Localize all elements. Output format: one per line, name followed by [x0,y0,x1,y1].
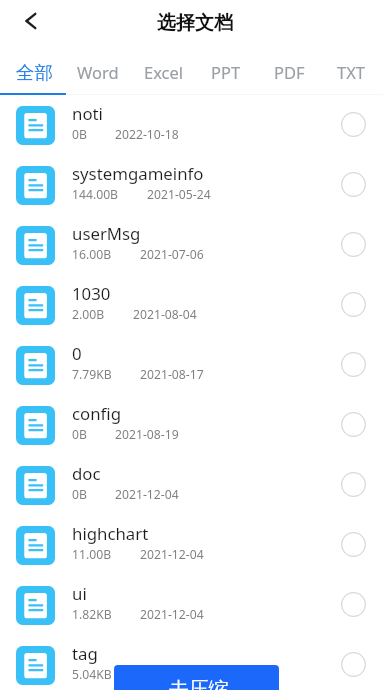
staticText: 11.00B [72,546,112,563]
staticText: 2021-12-04 [140,606,204,623]
button[interactable]: doc [0,455,383,515]
staticText: config [72,402,122,425]
button[interactable]: Select file [325,454,381,514]
button[interactable]: 去压缩 [114,665,279,690]
button[interactable]: noti [0,95,383,155]
staticText: noti [72,102,103,125]
staticText: Excel [144,61,184,83]
staticText: 2021-08-04 [133,306,197,323]
staticText: PDF [274,61,305,83]
button[interactable]: Select file [325,94,381,154]
button[interactable]: Word [67,49,129,95]
button[interactable]: Select file [325,634,381,690]
staticText: highchart [72,522,149,545]
button[interactable]: config [0,395,383,455]
staticText: 1.82KB [72,606,112,623]
staticText: 0B [72,126,87,143]
button[interactable]: PPT [195,49,257,95]
button[interactable]: TXT [320,49,382,95]
button[interactable]: 全部 [3,49,65,95]
staticText: 5.04KB [72,666,112,683]
button[interactable]: userMsg [0,215,383,275]
staticText: 7.79KB [72,366,112,383]
staticText: Word [77,61,119,83]
staticText: 1030 [72,282,111,305]
staticText: 2021-05-24 [147,186,211,203]
staticText: 0B [72,426,87,443]
button[interactable]: 0 [0,335,383,395]
button[interactable]: Select file [325,394,381,454]
button[interactable]: Select file [325,214,381,274]
staticText: 去压缩 [169,677,229,690]
staticText: 2021-08-17 [140,366,204,383]
staticText: 2021-07-06 [140,246,204,263]
staticText: 全部 [16,61,53,84]
staticText: systemgameinfo [72,162,204,185]
staticText: TXT [337,61,366,83]
staticText: 144.00B [72,186,119,203]
button[interactable]: Select file [325,274,381,334]
button[interactable]: Select file [325,154,381,214]
staticText: ui [72,582,87,605]
button[interactable]: Back [9,0,53,43]
staticText: userMsg [72,222,141,245]
staticText: PPT [211,61,241,83]
button[interactable]: highchart [0,515,383,575]
staticText: 2021-12-04 [115,486,179,503]
button[interactable]: Select file [325,514,381,574]
staticText: 2021-08-19 [115,426,179,443]
staticText: 2.00B [72,306,105,323]
staticText: 2022-10-18 [115,126,179,143]
staticText: 0B [72,486,87,503]
button[interactable]: systemgameinfo [0,155,383,215]
staticText: 16.00B [72,246,112,263]
staticText: 0 [72,342,82,365]
button[interactable]: ui [0,575,383,635]
staticText: tag [72,642,98,665]
button[interactable]: 1030 [0,275,383,335]
button[interactable]: Select file [325,574,381,634]
staticText: 2021-12-04 [140,546,204,563]
button[interactable]: Select file [325,334,381,394]
staticText: doc [72,462,101,485]
staticText: 选择文档 [157,11,233,35]
button[interactable]: tag [0,635,383,690]
button[interactable]: PDF [258,49,320,95]
button[interactable]: Excel [133,49,195,95]
staticText: 2021-12-04 [140,666,204,683]
